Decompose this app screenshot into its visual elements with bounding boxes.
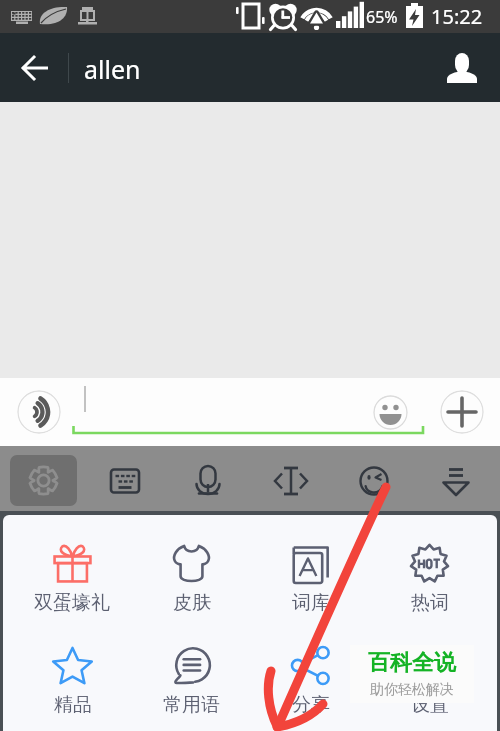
staticText: 百科全说 xyxy=(368,649,456,677)
staticText: 词库 xyxy=(292,591,330,615)
button[interactable]: Profile xyxy=(431,37,493,99)
button[interactable]: 词库 xyxy=(251,515,370,617)
staticText: 助你轻松解决 xyxy=(370,681,454,699)
button[interactable]: More options xyxy=(440,390,484,434)
button[interactable]: 双蛋壕礼 xyxy=(12,515,132,617)
button[interactable]: Voice input xyxy=(17,390,61,434)
staticText: 热词 xyxy=(411,591,449,615)
button[interactable]: 精品 xyxy=(12,617,132,719)
button[interactable]: 皮肤 xyxy=(132,515,251,617)
button[interactable]: 热词 xyxy=(370,515,489,617)
staticText: allen xyxy=(84,52,141,86)
button[interactable]: Emoji xyxy=(373,395,408,430)
staticText: 精品 xyxy=(54,693,92,717)
staticText: 设置 xyxy=(411,693,449,717)
button[interactable]: Settings xyxy=(10,455,77,506)
staticText: 常用语 xyxy=(163,693,220,717)
button[interactable]: Voice input xyxy=(175,455,241,506)
staticText: 双蛋壕礼 xyxy=(34,591,110,615)
staticText: 分享 xyxy=(292,693,330,717)
button[interactable]: Back xyxy=(6,39,64,97)
button[interactable]: Hide keyboard xyxy=(423,455,489,506)
button[interactable]: Emoji xyxy=(341,455,407,506)
staticText: 65% xyxy=(366,6,398,28)
staticText: 皮肤 xyxy=(173,591,211,615)
button[interactable]: 常用语 xyxy=(132,617,251,719)
button[interactable]: 分享 xyxy=(251,617,370,719)
button[interactable]: 设置 xyxy=(370,617,489,719)
staticText: 15:22 xyxy=(431,3,483,30)
button[interactable]: Edit text xyxy=(258,455,324,506)
button[interactable]: Keyboard xyxy=(92,455,158,506)
